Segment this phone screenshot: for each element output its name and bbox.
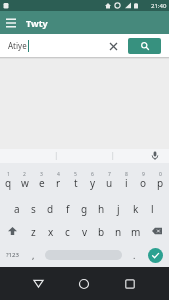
staticText: Atiye: [8, 40, 27, 51]
button[interactable]: 0: [152, 163, 169, 197]
button[interactable]: [16, 267, 61, 300]
button[interactable]: 7: [101, 163, 118, 197]
staticText: 7: [108, 171, 111, 178]
staticText: b: [98, 225, 105, 239]
staticText: Twty: [26, 17, 48, 29]
button[interactable]: [0, 12, 22, 34]
button[interactable]: 3: [33, 163, 50, 197]
staticText: o: [140, 176, 147, 190]
staticText: z: [31, 225, 36, 239]
button[interactable]: 5: [67, 163, 84, 197]
staticText: h: [98, 202, 105, 216]
staticText: m: [131, 225, 141, 239]
staticText: i: [125, 176, 128, 190]
button[interactable]: d: [42, 197, 59, 220]
staticText: v: [82, 225, 88, 239]
button[interactable]: f: [59, 197, 76, 220]
staticText: 5: [74, 171, 77, 178]
button[interactable]: [107, 267, 153, 300]
staticText: q: [5, 176, 12, 190]
button[interactable]: h: [93, 197, 110, 220]
staticText: 9: [142, 171, 145, 178]
button[interactable]: 2: [16, 163, 33, 197]
staticText: g: [81, 202, 88, 216]
button[interactable]: ?123: [0, 243, 25, 267]
button[interactable]: 1: [0, 163, 16, 197]
staticText: 0: [159, 171, 162, 178]
staticText: e: [39, 176, 45, 190]
staticText: s: [31, 202, 36, 216]
staticText: 3: [40, 171, 43, 178]
button[interactable]: [0, 220, 25, 243]
button[interactable]: b: [93, 220, 110, 243]
staticText: n: [115, 225, 122, 239]
button[interactable]: 6: [84, 163, 101, 197]
button[interactable]: [128, 38, 161, 54]
button[interactable]: ,: [25, 243, 41, 267]
button[interactable]: k: [127, 197, 144, 220]
button[interactable]: x: [42, 220, 59, 243]
staticText: t: [74, 176, 78, 190]
button[interactable]: j: [110, 197, 127, 220]
button[interactable]: [144, 220, 169, 243]
staticText: 1: [7, 171, 10, 178]
staticText: 21:40: [151, 2, 167, 10]
staticText: x: [48, 225, 54, 239]
button[interactable]: z: [25, 220, 42, 243]
staticText: j: [117, 202, 120, 216]
staticText: 8: [125, 171, 128, 178]
staticText: d: [47, 202, 54, 216]
button[interactable]: [142, 243, 169, 267]
button[interactable]: .: [126, 243, 142, 267]
staticText: c: [65, 225, 70, 239]
staticText: 4: [57, 171, 60, 178]
button[interactable]: l: [144, 197, 161, 220]
staticText: f: [66, 202, 70, 216]
button[interactable]: 4: [50, 163, 67, 197]
button[interactable]: [61, 267, 107, 300]
button[interactable]: s: [25, 197, 42, 220]
button[interactable]: 8: [118, 163, 135, 197]
staticText: 2: [23, 171, 26, 178]
staticText: w: [21, 176, 29, 190]
staticText: ,: [32, 249, 35, 261]
button[interactable]: 9: [135, 163, 152, 197]
staticText: 6: [91, 171, 94, 178]
button[interactable]: a: [8, 197, 25, 220]
staticText: .: [133, 249, 136, 261]
button[interactable]: c: [59, 220, 76, 243]
button[interactable]: [45, 250, 122, 260]
staticText: r: [56, 176, 61, 190]
staticText: p: [157, 176, 164, 190]
button[interactable]: v: [76, 220, 93, 243]
staticText: l: [151, 202, 154, 216]
staticText: k: [133, 202, 139, 216]
staticText: u: [106, 176, 113, 190]
button[interactable]: m: [127, 220, 144, 243]
button[interactable]: n: [110, 220, 127, 243]
staticText: y: [90, 176, 96, 190]
staticText: ?123: [6, 251, 19, 259]
button[interactable]: g: [76, 197, 93, 220]
staticText: a: [14, 202, 20, 216]
button[interactable]: [105, 38, 121, 54]
